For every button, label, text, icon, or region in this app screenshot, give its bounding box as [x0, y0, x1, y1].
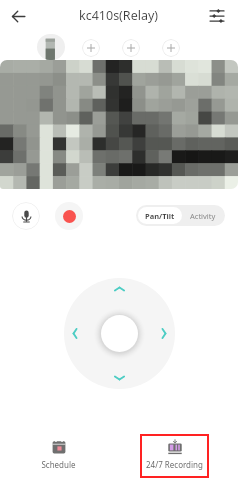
button[interactable]: 24/7 Recording: [116, 430, 232, 482]
button[interactable]: Camera kc410s: [37, 34, 65, 60]
staticText: Activity: [190, 211, 216, 221]
button[interactable]: Pan/Tilt: [138, 207, 182, 224]
button[interactable]: Pan tilt control: [64, 278, 175, 389]
button[interactable]: Add camera: [82, 39, 100, 57]
button[interactable]: Back: [5, 3, 31, 29]
button[interactable]: Record: [55, 202, 83, 230]
button[interactable]: Add camera: [122, 39, 140, 57]
button[interactable]: Microphone: [12, 202, 40, 230]
staticText: kc410s(Relay): [79, 7, 159, 24]
button[interactable]: Schedule: [0, 430, 116, 482]
staticText: Pan/Tilt: [145, 211, 175, 221]
staticText: Schedule: [41, 459, 76, 470]
button[interactable]: Center: [101, 315, 138, 352]
button[interactable]: Activity: [184, 205, 225, 226]
button[interactable]: Settings: [207, 6, 227, 26]
staticText: 24/7 Recording: [146, 459, 203, 470]
button[interactable]: Add camera: [162, 39, 180, 57]
